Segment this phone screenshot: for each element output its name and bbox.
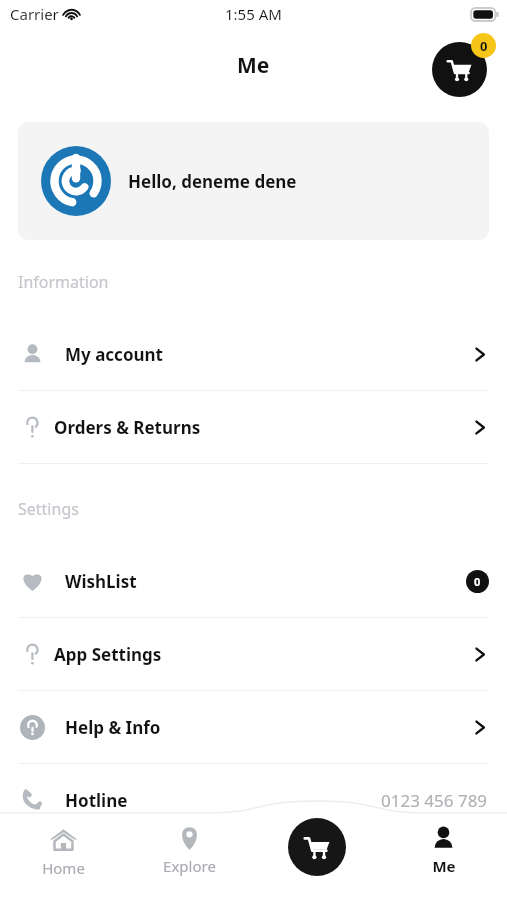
button[interactable]: Hello, deneme dene xyxy=(18,122,489,240)
staticText: Explore xyxy=(163,856,216,876)
button[interactable]: Orders & Returns xyxy=(0,391,507,463)
staticText: Help & Info xyxy=(65,716,161,739)
staticText: Me xyxy=(237,51,270,80)
staticText: WishList xyxy=(65,570,137,593)
button[interactable]: App Settings xyxy=(0,618,507,690)
button[interactable]: Cart xyxy=(288,818,346,876)
button[interactable]: Hotline xyxy=(0,764,507,836)
staticText: Information xyxy=(18,271,109,293)
staticText: 0 xyxy=(480,37,488,55)
button[interactable]: Me xyxy=(380,822,507,879)
staticText: Settings xyxy=(18,498,79,520)
staticText: Carrier xyxy=(10,4,59,24)
staticText: 0123 456 789 xyxy=(381,789,488,812)
button[interactable]: Shopping cart, 0 items xyxy=(432,33,496,97)
staticText: Orders & Returns xyxy=(54,416,201,439)
button[interactable]: Home xyxy=(0,822,126,881)
button[interactable]: My account xyxy=(0,318,507,390)
staticText: My account xyxy=(65,343,163,366)
staticText: 1:55 AM xyxy=(225,4,282,24)
button[interactable]: WishList xyxy=(0,545,507,617)
staticText: Hello, deneme dene xyxy=(128,170,297,193)
button[interactable]: Explore xyxy=(126,822,253,879)
staticText: Me xyxy=(432,856,456,876)
staticText: Home xyxy=(42,858,85,878)
staticText: Hotline xyxy=(65,789,128,812)
staticText: 0 xyxy=(474,574,481,589)
staticText: App Settings xyxy=(54,643,162,666)
button[interactable]: Help & Info xyxy=(0,691,507,763)
